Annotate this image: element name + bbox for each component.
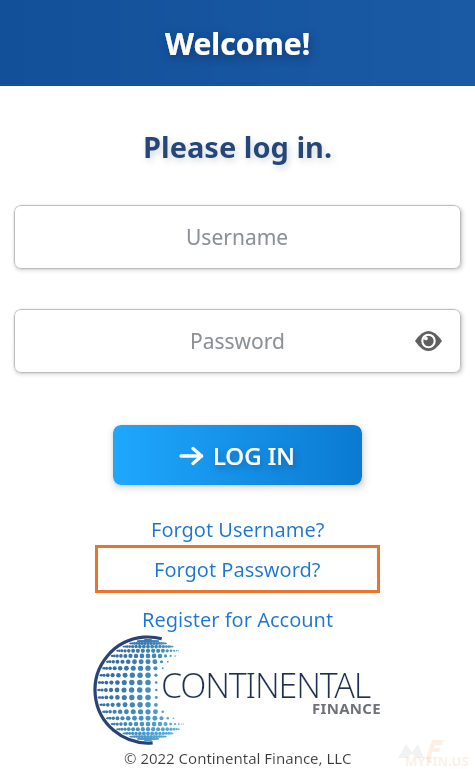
staticText: CONTINENTAL: [161, 662, 370, 708]
button[interactable]: Register for Account: [142, 606, 334, 633]
staticText: Password: [190, 327, 285, 356]
staticText: Welcome!: [165, 23, 311, 64]
staticText: FINANCE: [312, 698, 381, 718]
button[interactable]: Forgot Password?: [95, 545, 380, 593]
staticText: Username: [186, 223, 289, 252]
staticText: Forgot Password?: [154, 556, 321, 583]
staticText: LOG IN: [213, 439, 295, 472]
staticText: MYFIN.US: [405, 752, 469, 769]
button[interactable]: Password: [14, 309, 461, 373]
button[interactable]: Forgot Username?: [151, 516, 325, 543]
button[interactable]: Username: [14, 205, 461, 269]
button[interactable]: LOG IN: [113, 425, 362, 485]
staticText: Please log in.: [143, 127, 333, 166]
staticText: © 2022 Continental Finance, LLC: [124, 748, 352, 768]
